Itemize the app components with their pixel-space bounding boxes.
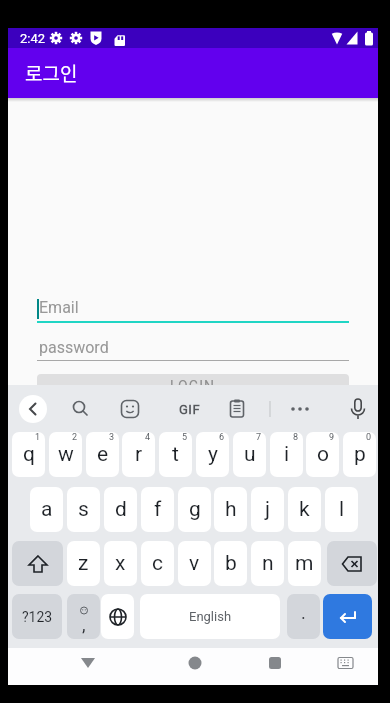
staticText: u [244, 442, 256, 467]
staticText: t [172, 442, 179, 467]
staticText: English [189, 609, 232, 624]
staticText: 7 [256, 432, 262, 443]
button[interactable] [12, 541, 63, 586]
staticText: a [41, 497, 53, 522]
staticText: d [115, 497, 127, 522]
staticText: GIF [179, 402, 201, 417]
staticText: g [189, 497, 201, 522]
button[interactable]: v [178, 541, 211, 586]
button[interactable] [255, 648, 378, 685]
button[interactable] [132, 648, 255, 685]
button[interactable]: b [214, 541, 247, 586]
button[interactable]: t [159, 432, 192, 477]
staticText: j [265, 497, 271, 522]
button[interactable]: n [251, 541, 284, 586]
staticText: s [78, 497, 89, 522]
button[interactable] [19, 395, 47, 423]
staticText: 3 [109, 432, 115, 443]
staticText: r [135, 442, 143, 467]
staticText: m [295, 551, 314, 576]
staticText: 9 [329, 432, 335, 443]
button[interactable]: . [287, 594, 320, 639]
staticText: 0 [366, 432, 372, 443]
button[interactable]: p [343, 432, 376, 477]
staticText: n [262, 551, 274, 576]
staticText: Email [39, 298, 79, 317]
button[interactable]: c [141, 541, 174, 586]
staticText: b [225, 551, 237, 576]
staticText: k [299, 497, 310, 522]
staticText: 2:42 [20, 31, 46, 46]
button[interactable]: ?123 [12, 594, 62, 639]
staticText: o [317, 442, 329, 467]
button[interactable]: m [288, 541, 321, 586]
staticText: x [115, 551, 126, 576]
staticText: 2 [72, 432, 78, 443]
button[interactable] [327, 541, 377, 586]
staticText: y [208, 442, 218, 467]
staticText: , [82, 614, 86, 635]
staticText: ?123 [22, 609, 53, 625]
button[interactable]: d [104, 487, 137, 532]
staticText: e [97, 442, 109, 467]
button[interactable]: g [178, 487, 211, 532]
button[interactable]: q [12, 432, 45, 477]
staticText: 8 [293, 432, 299, 443]
staticText: LOGIN [170, 378, 216, 385]
button[interactable]: h [214, 487, 247, 532]
staticText: c [152, 551, 163, 576]
button[interactable]: r [122, 432, 155, 477]
button[interactable]: z [67, 541, 100, 586]
button[interactable]: j [251, 487, 284, 532]
button[interactable]: a [30, 487, 63, 532]
staticText: . [301, 602, 306, 623]
staticText: 6 [219, 432, 225, 443]
staticText: f [154, 497, 162, 522]
button[interactable]: i [270, 432, 303, 477]
staticText: q [23, 442, 35, 467]
button[interactable]: l [325, 487, 358, 532]
staticText: i [284, 442, 290, 467]
button[interactable]: LOGIN [37, 374, 349, 385]
button[interactable]: k [288, 487, 321, 532]
button[interactable]: w [49, 432, 82, 477]
button[interactable] [323, 594, 372, 639]
button[interactable]: , [67, 594, 100, 639]
button[interactable] [8, 648, 132, 685]
staticText: w [58, 442, 74, 467]
button[interactable]: s [67, 487, 100, 532]
staticText: 4 [145, 432, 151, 443]
staticText: 로그인 [25, 59, 78, 87]
button[interactable] [101, 594, 134, 639]
staticText: 5 [182, 432, 188, 443]
button[interactable]: o [306, 432, 339, 477]
button[interactable]: GIF [168, 395, 212, 423]
button[interactable]: y [196, 432, 229, 477]
button[interactable]: x [104, 541, 137, 586]
staticText: h [225, 497, 237, 522]
staticText: password [39, 338, 109, 357]
staticText: p [354, 442, 366, 467]
button[interactable]: English [140, 594, 280, 639]
staticText: 1 [35, 432, 41, 443]
button[interactable]: u [233, 432, 266, 477]
staticText: l [339, 497, 345, 522]
button[interactable]: f [141, 487, 174, 532]
staticText: z [78, 551, 89, 576]
staticText: v [189, 551, 200, 576]
button[interactable]: e [86, 432, 119, 477]
